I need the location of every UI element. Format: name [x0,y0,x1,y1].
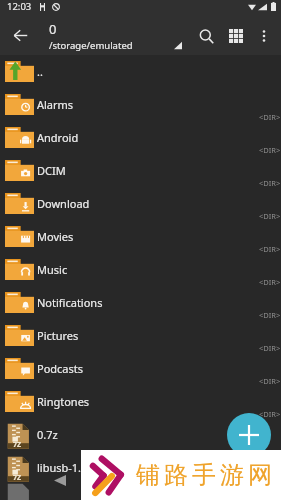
staticText: libusb-1.0.21.7z [37,460,281,475]
staticText: <DIR> [259,211,281,221]
staticText: .. [37,64,281,79]
button[interactable]: 7Z [0,418,281,451]
button[interactable]: 7Z [0,451,281,484]
button[interactable]: Alarms [0,88,281,121]
staticText: Android [37,130,259,145]
staticText: 12:03 [7,0,32,13]
button[interactable]: Ringtones [0,385,281,418]
staticText: 7Z [13,473,22,483]
button[interactable]: Back [46,466,74,494]
staticText: 0 [49,20,57,38]
staticText: Music [37,262,259,277]
button[interactable]: Notifications [0,286,281,319]
staticText: Download [37,196,259,211]
staticText: Podcasts [37,361,259,376]
staticText: 7Z [13,440,22,450]
button[interactable]: Podcasts [0,352,281,385]
button[interactable]: Music [0,253,281,286]
staticText: <DIR> [259,112,281,122]
staticText: <DIR> [259,277,281,287]
button[interactable] [0,484,281,500]
staticText: <DIR> [259,145,281,155]
staticText: <DIR> [259,244,281,254]
staticText: <DIR> [259,343,281,353]
staticText: <DIR> [259,409,281,419]
button[interactable]: Pictures [0,319,281,352]
staticText: 0.7z [37,427,281,442]
button[interactable]: Search [191,21,221,51]
staticText [37,485,281,500]
staticText: DCIM [37,163,259,178]
staticText: <DIR> [259,178,281,188]
button[interactable]: More options [251,23,277,49]
staticText: Alarms [37,97,259,112]
staticText: <DIR> [259,376,281,386]
staticText: Pictures [37,328,259,343]
staticText: Movies [37,229,259,244]
staticText: /storage/emulated [49,39,133,52]
button[interactable]: Movies [0,220,281,253]
staticText: Ringtones [37,394,259,409]
staticText: 铺路手游网 [134,460,274,490]
button[interactable]: Back [0,16,41,55]
button[interactable]: Grid view [221,21,251,51]
button[interactable]: Add [227,413,271,457]
button[interactable]: Android [0,121,281,154]
staticText: Notifications [37,295,259,310]
staticText: <DIR> [259,310,281,320]
button[interactable]: Download [0,187,281,220]
button[interactable]: .. [0,55,281,88]
button[interactable]: DCIM [0,154,281,187]
